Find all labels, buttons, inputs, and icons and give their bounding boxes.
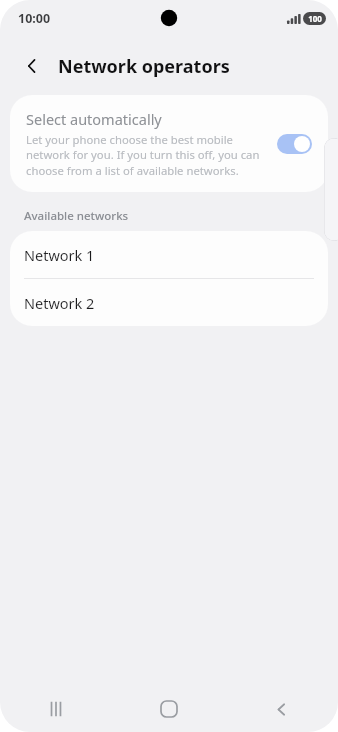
staticText: Available networks: [24, 208, 129, 224]
button[interactable]: Select automatically: [10, 95, 328, 192]
button[interactable]: Select automatically toggle: [277, 134, 312, 154]
staticText: 100: [308, 13, 322, 24]
button[interactable]: Network 1: [10, 231, 328, 278]
staticText: Network 1: [24, 245, 95, 265]
staticText: Let your phone choose the best mobile ne…: [26, 132, 265, 178]
button[interactable]: Recent apps: [0, 686, 112, 732]
button[interactable]: Home: [112, 686, 225, 732]
staticText: Network operators: [58, 54, 230, 79]
button[interactable]: Network 2: [10, 279, 328, 326]
staticText: Select automatically: [26, 109, 162, 129]
staticText: 10:00: [18, 10, 51, 27]
staticText: Network 2: [24, 293, 95, 313]
button[interactable]: Back: [225, 686, 338, 732]
button[interactable]: Back: [16, 50, 48, 82]
